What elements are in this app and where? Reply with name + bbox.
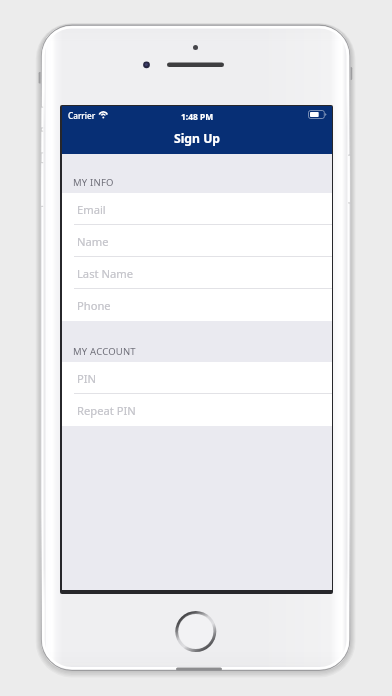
staticText: Name xyxy=(77,234,109,249)
staticText: Repeat PIN xyxy=(77,403,136,418)
staticText: Sign Up xyxy=(174,130,221,147)
staticText: MY INFO xyxy=(73,176,114,189)
staticText: Email xyxy=(77,202,106,217)
button[interactable]: PIN xyxy=(62,362,332,394)
button[interactable]: Email xyxy=(62,193,332,225)
staticText: PIN xyxy=(77,371,97,386)
button[interactable]: Name xyxy=(62,225,332,257)
staticText: MY ACCOUNT xyxy=(73,345,136,358)
staticText: Last Name xyxy=(77,266,133,281)
button[interactable]: Last Name xyxy=(62,257,332,289)
staticText: 1:48 PM xyxy=(181,111,214,122)
button[interactable]: Phone xyxy=(62,289,332,321)
staticText: Phone xyxy=(77,298,111,313)
staticText: Carrier xyxy=(68,110,96,121)
button[interactable]: Repeat PIN xyxy=(62,394,332,426)
